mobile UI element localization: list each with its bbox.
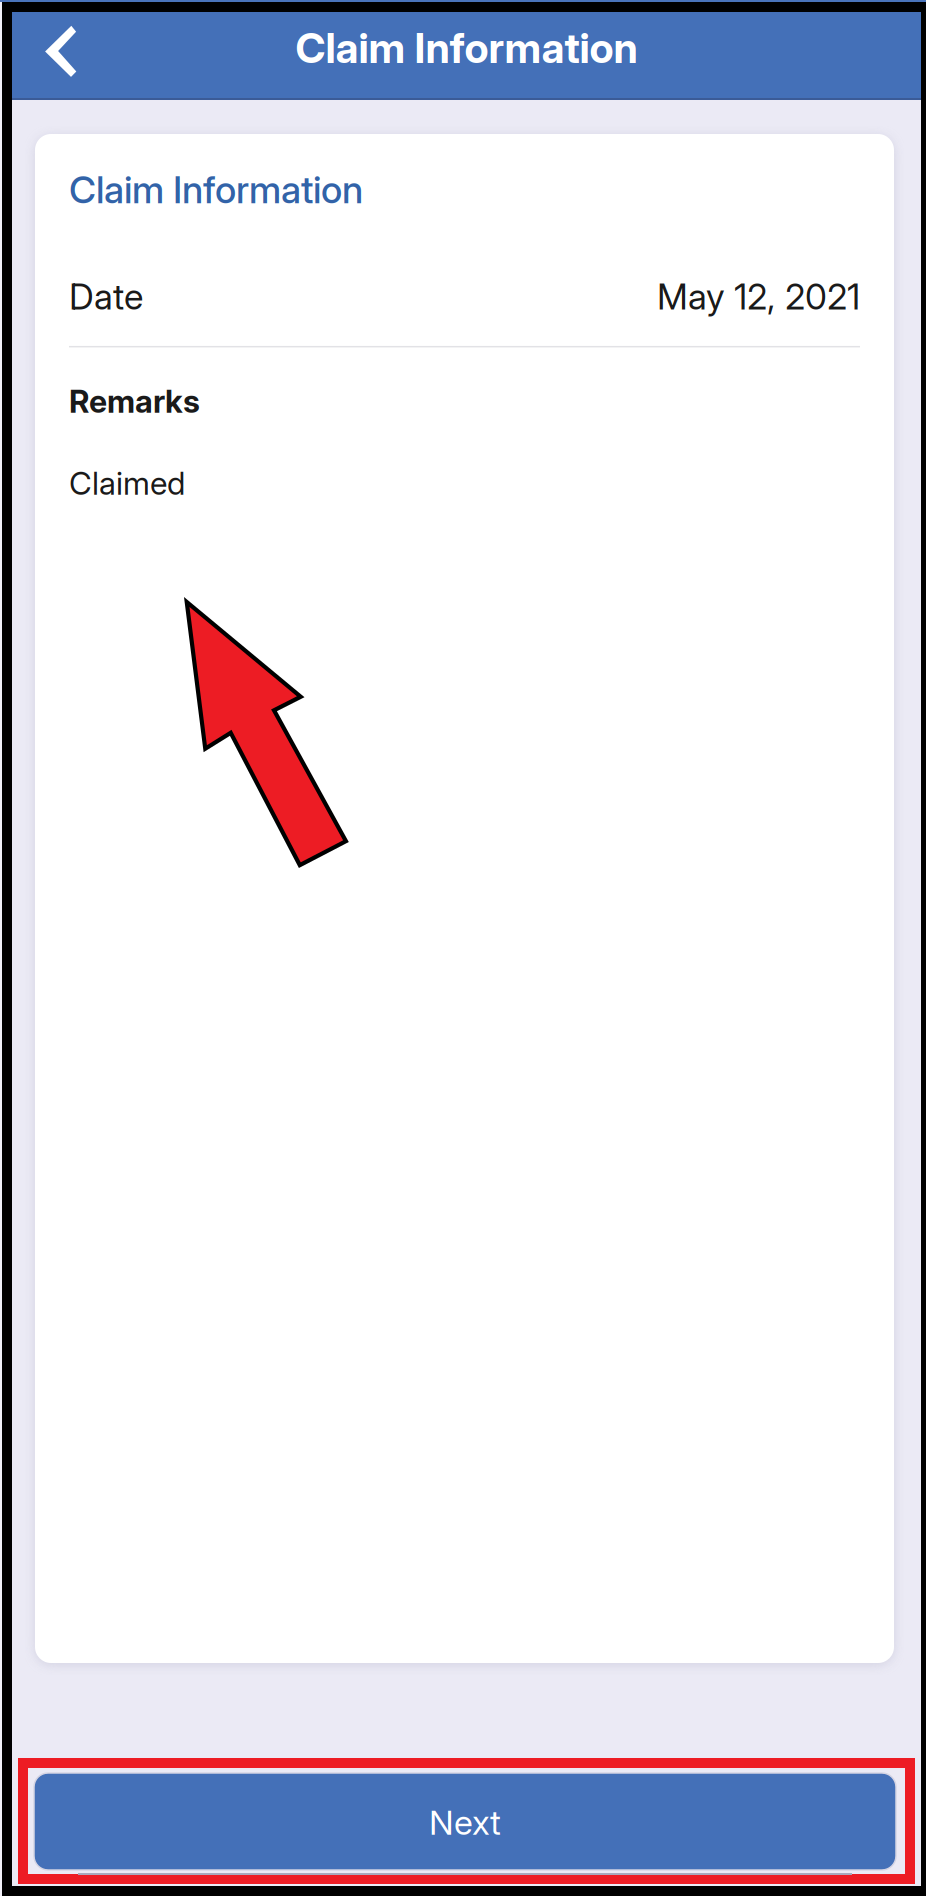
staticText: Claim Information xyxy=(295,23,637,73)
button[interactable]: Next xyxy=(12,1758,921,1886)
staticText: Next xyxy=(429,1802,501,1843)
staticText: Date xyxy=(69,275,143,318)
staticText: Remarks xyxy=(69,382,200,420)
staticText: Claimed xyxy=(69,464,185,502)
staticText: Claim Information xyxy=(69,167,363,212)
staticText: May 12, 2021 xyxy=(657,275,860,318)
button[interactable]: Back xyxy=(12,12,108,100)
